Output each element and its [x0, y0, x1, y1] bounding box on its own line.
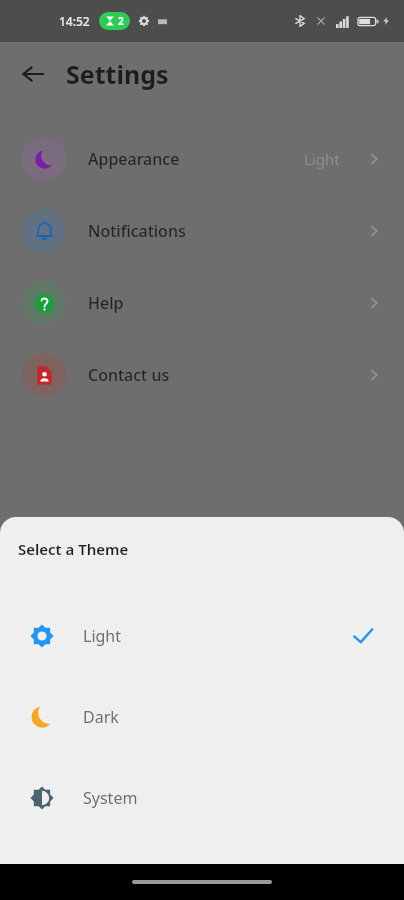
staticText: Help: [88, 292, 366, 314]
staticText: Appearance: [88, 148, 304, 170]
staticText: Notifications: [88, 220, 366, 242]
button[interactable]: Notifications: [0, 195, 404, 267]
staticText: Select a Theme: [18, 539, 129, 559]
staticText: Dark: [83, 706, 374, 728]
button[interactable]: Dark: [0, 676, 404, 757]
staticText: 2: [118, 14, 124, 28]
button[interactable]: System: [0, 757, 404, 838]
staticText: Contact us: [88, 364, 366, 386]
staticText: 14:52: [59, 13, 90, 29]
button[interactable]: Back: [12, 53, 54, 95]
button[interactable]: Help: [0, 267, 404, 339]
staticText: Settings: [66, 57, 169, 91]
staticText: Light: [83, 625, 352, 647]
button[interactable]: Light: [0, 595, 404, 676]
staticText: Light: [304, 149, 340, 169]
button[interactable]: Contact us: [0, 339, 404, 411]
staticText: System: [83, 787, 374, 809]
button[interactable]: Appearance: [0, 123, 404, 195]
